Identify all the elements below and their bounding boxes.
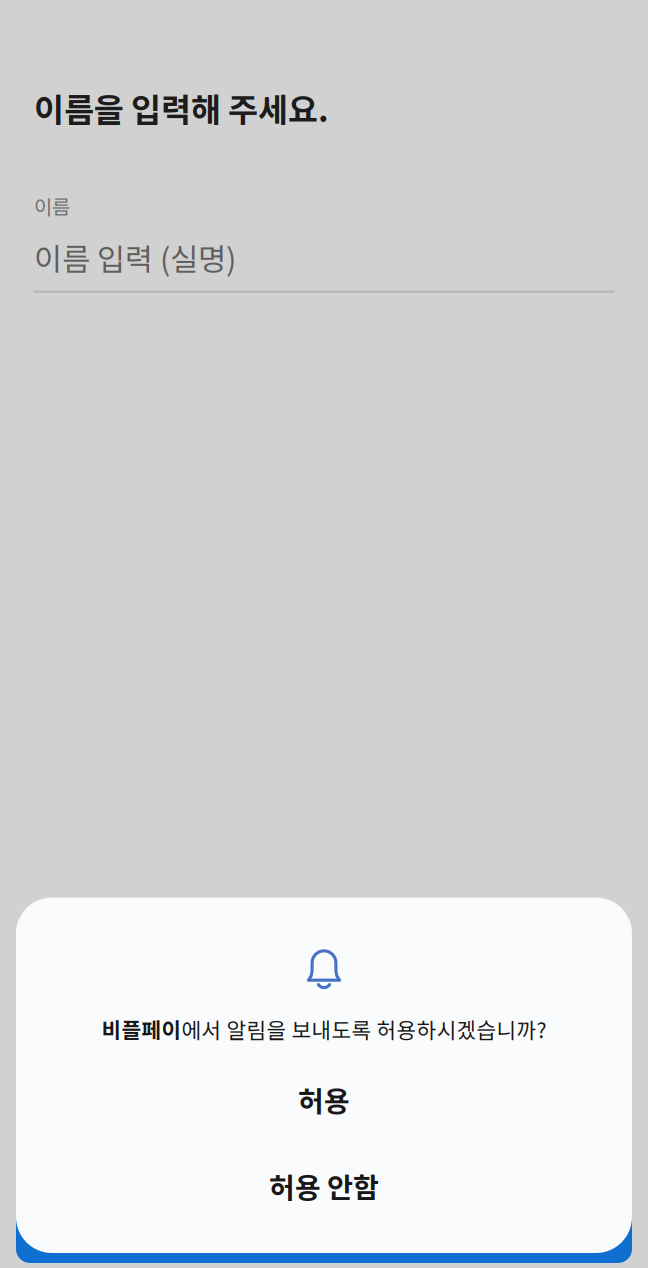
button[interactable]: 허용 — [16, 1044, 632, 1142]
button[interactable]: 이름 — [34, 191, 615, 293]
staticText: 비플페이에서 알림을 보내도록 허용하시겠습니까? — [101, 1014, 546, 1044]
staticText: 허용 — [298, 1079, 350, 1119]
staticText: 이름 입력 (실명) — [34, 235, 236, 280]
button[interactable]: 허용 안함 — [16, 1142, 632, 1253]
staticText: 허용 안함 — [269, 1165, 379, 1206]
staticText: 이름을 입력해 주세요. — [34, 84, 329, 131]
staticText: 이름 — [34, 191, 70, 220]
